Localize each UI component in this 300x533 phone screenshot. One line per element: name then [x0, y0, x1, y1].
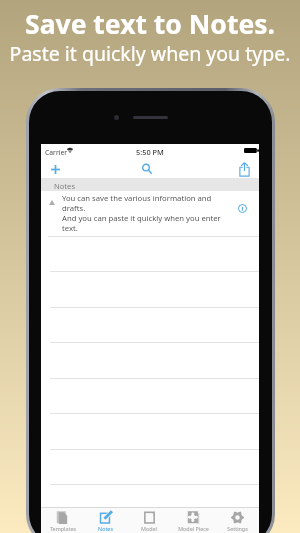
button[interactable]: Model — [127, 508, 171, 533]
staticText: Notes — [54, 181, 76, 191]
staticText: You can save the various information and… — [62, 193, 221, 233]
staticText: Save text to Notes. — [0, 6, 300, 42]
staticText: Notes — [98, 525, 113, 532]
staticText: 5:50 PM — [136, 147, 164, 157]
button[interactable]: Add note — [41, 159, 71, 179]
button[interactable] — [41, 449, 259, 485]
button[interactable] — [41, 307, 259, 343]
button[interactable] — [41, 378, 259, 414]
button[interactable]: Settings — [215, 508, 259, 533]
staticText: Model — [141, 525, 157, 532]
button[interactable]: Share — [229, 159, 259, 179]
staticText: Paste it quickly when you type. — [0, 40, 300, 67]
button[interactable]: You can save the various information and… — [41, 191, 259, 237]
staticText: Model Piece — [178, 525, 209, 532]
button[interactable]: Notes — [84, 508, 127, 533]
button[interactable]: Model Piece — [171, 508, 215, 533]
button[interactable]: Search — [132, 159, 162, 179]
button[interactable] — [41, 237, 259, 272]
staticText: Settings — [227, 525, 248, 532]
button[interactable] — [41, 343, 259, 379]
button[interactable] — [41, 272, 259, 308]
button[interactable] — [41, 414, 259, 450]
staticText: Templates — [50, 525, 76, 532]
staticText: Carrier — [45, 148, 68, 157]
button[interactable]: Templates — [41, 508, 84, 533]
